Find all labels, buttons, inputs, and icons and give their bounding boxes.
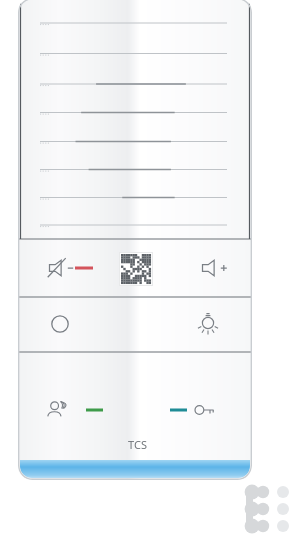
button[interactable]: Mute speaker <box>26 246 96 288</box>
button[interactable]: Answer call <box>26 390 112 432</box>
button[interactable]: Open door <box>158 390 244 432</box>
button[interactable]: Menu <box>26 302 96 346</box>
button[interactable]: Scan QR code <box>116 246 158 288</box>
button[interactable]: Increase volume <box>178 246 244 288</box>
button[interactable]: Light <box>176 302 244 346</box>
staticText: TCS <box>128 437 147 452</box>
